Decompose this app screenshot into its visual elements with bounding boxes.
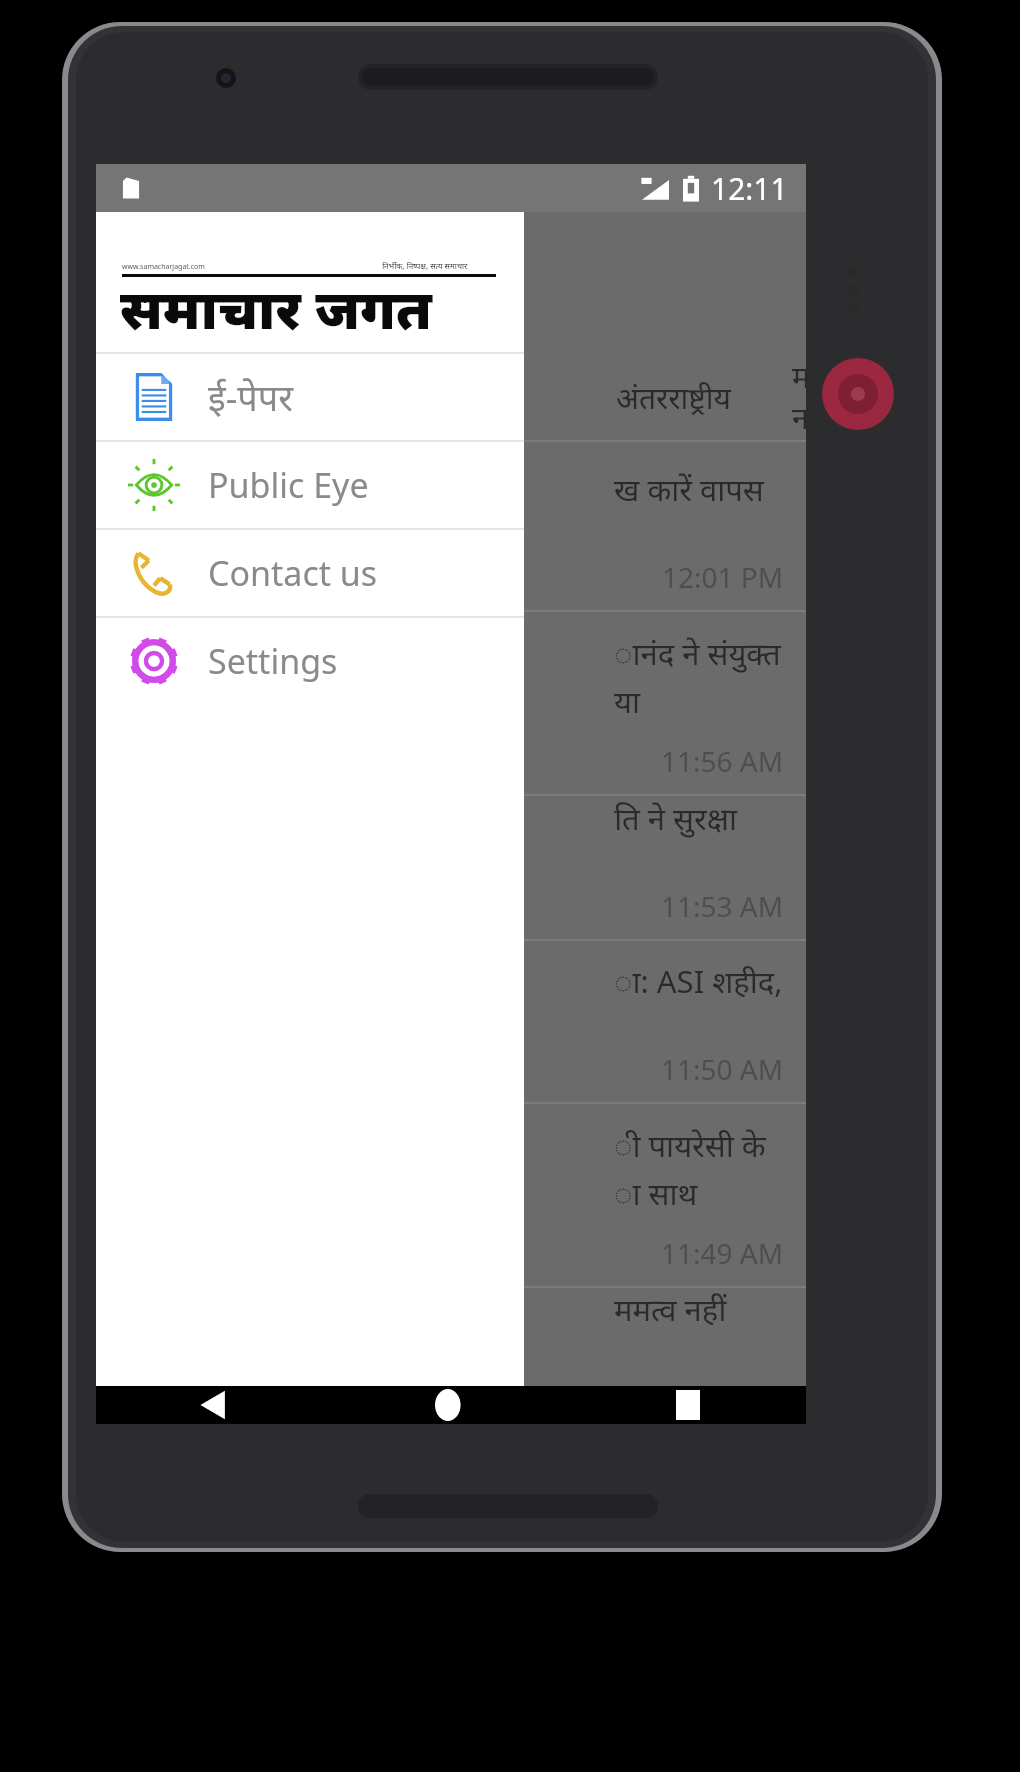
staticText: समाचार जगत <box>120 270 432 345</box>
staticText: ई-पेपर <box>208 373 293 422</box>
staticText: ानंद ने संयुक्त दूसरा <box>614 632 806 674</box>
staticText: 11:49 AM <box>661 1234 784 1272</box>
staticText: या <box>614 680 641 722</box>
button[interactable]: ई-पेपर <box>96 354 524 440</box>
staticText: ममत्व नहीं जानती <box>614 1288 806 1330</box>
staticText: 11:53 AM <box>661 887 784 925</box>
staticText: www.samacharjagat.com <box>122 262 205 272</box>
staticText: Public Eye <box>208 462 369 508</box>
staticText: Settings <box>208 638 338 684</box>
staticText: 12:11 <box>711 168 788 209</box>
staticText: निर्भीक, निष्पक्ष, सत्य समाचार <box>382 260 468 271</box>
staticText: 12:01 PM <box>662 558 784 596</box>
button[interactable]: Back <box>96 1386 332 1424</box>
button[interactable]: Contact us <box>96 530 524 616</box>
staticText: ा साथ <box>614 1172 698 1214</box>
staticText: Contact us <box>208 550 378 596</box>
staticText: ति ने सुरक्षा कारणों से <box>614 797 806 839</box>
staticText: ी पायरेसी के खिलाफ जंग, <box>614 1124 806 1166</box>
staticText: मन <box>792 356 806 438</box>
staticText: ा: ASI शहीद, दो <box>614 960 806 1002</box>
staticText: 11:50 AM <box>661 1050 784 1088</box>
button[interactable]: Home <box>332 1386 569 1424</box>
staticText: 11:56 AM <box>661 742 784 780</box>
button[interactable]: Record <box>822 358 894 430</box>
staticText: ख कारें वापस <box>614 468 764 510</box>
button[interactable]: Public Eye <box>96 442 524 528</box>
button[interactable]: Recent apps <box>569 1386 806 1424</box>
button[interactable]: Settings <box>96 618 524 704</box>
staticText: अंतरराष्ट्रीय <box>616 377 732 418</box>
